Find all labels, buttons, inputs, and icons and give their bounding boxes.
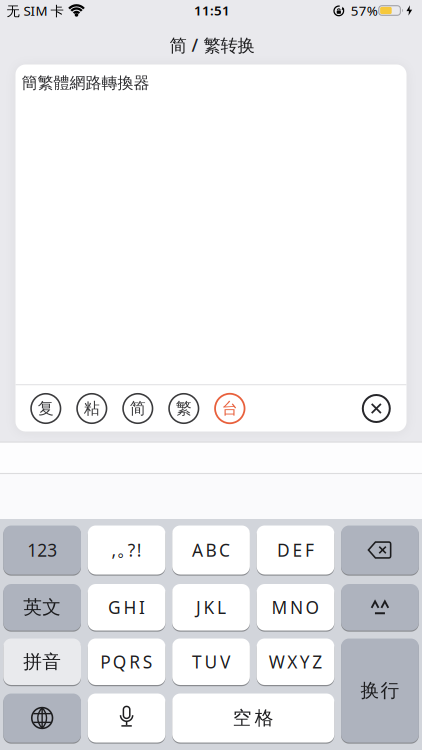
staticText: 繁 — [176, 399, 192, 418]
staticText: ABC — [192, 538, 230, 561]
staticText: 拼音 — [23, 650, 61, 673]
staticText: MNO — [271, 596, 319, 619]
staticText: 换行 — [360, 679, 399, 702]
staticText: 英文 — [23, 596, 61, 619]
staticText: 粘 — [84, 399, 100, 418]
button[interactable]: DEF — [257, 525, 334, 574]
button[interactable]: 粘 — [76, 393, 107, 424]
button[interactable]: 繁 — [168, 393, 199, 424]
button[interactable]: GHI — [88, 584, 165, 630]
staticText: JKL — [196, 596, 226, 619]
button[interactable]: 听写 — [88, 693, 165, 742]
staticText: 簡繁體網路轉換器 — [21, 73, 149, 93]
staticText: PQRS — [100, 650, 153, 673]
staticText: TUV — [192, 650, 230, 673]
button[interactable]: 空格 — [172, 693, 334, 742]
staticText: WXYZ — [269, 650, 322, 673]
button[interactable]: 台 — [214, 393, 245, 424]
button[interactable]: MNO — [257, 584, 334, 630]
button[interactable]: PQRS — [88, 638, 165, 685]
button[interactable]: 删除 — [341, 525, 419, 574]
button[interactable]: 英文 — [3, 584, 81, 630]
button[interactable]: 清除 — [362, 394, 390, 422]
button[interactable]: 拼音 — [3, 638, 81, 685]
staticText: 57% — [351, 2, 378, 19]
button[interactable]: JKL — [172, 584, 250, 630]
button[interactable]: ,｡?! — [88, 525, 165, 574]
staticText: 简 — [130, 399, 146, 418]
button[interactable]: 简 — [122, 393, 153, 424]
button[interactable]: WXYZ — [257, 638, 334, 685]
staticText: GHI — [108, 596, 145, 619]
staticText: 空格 — [233, 706, 274, 729]
button[interactable]: 下一个键盘 — [3, 693, 81, 742]
button[interactable]: TUV — [172, 638, 250, 685]
staticText: 简 / 繁转换 — [169, 33, 254, 56]
button[interactable]: ABC — [172, 525, 250, 574]
staticText: 11:51 — [194, 1, 230, 19]
staticText: ,｡?! — [111, 538, 142, 561]
staticText: DEF — [277, 538, 314, 561]
button[interactable]: 123 — [3, 525, 81, 574]
staticText: 123 — [27, 538, 57, 561]
staticText: 台 — [222, 399, 238, 418]
staticText: 复 — [38, 399, 54, 418]
button[interactable]: 换行 — [341, 638, 419, 742]
button[interactable]: 复 — [30, 393, 61, 424]
staticText: 无 SIM 卡 — [6, 2, 63, 19]
button[interactable]: 分词 — [341, 584, 419, 630]
